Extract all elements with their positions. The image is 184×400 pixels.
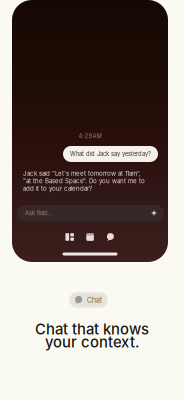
- staticText: What did Jack say yesterday?: [70, 150, 151, 157]
- staticText: Chat: [87, 295, 102, 304]
- button[interactable]: Apps: [65, 232, 74, 241]
- button[interactable]: Ask field...: [17, 205, 164, 221]
- staticText: Jack said "Let's meet tomorrow at 11am",…: [23, 170, 145, 192]
- staticText: 4:29AM: [78, 132, 101, 140]
- button[interactable]: Chat: [69, 292, 108, 308]
- staticText: your context.: [45, 333, 139, 351]
- staticText: Ask field...: [25, 209, 54, 217]
- button[interactable]: Cards: [86, 232, 95, 241]
- staticText: Chat that knows: [35, 320, 149, 338]
- button[interactable]: Chat: [106, 232, 115, 241]
